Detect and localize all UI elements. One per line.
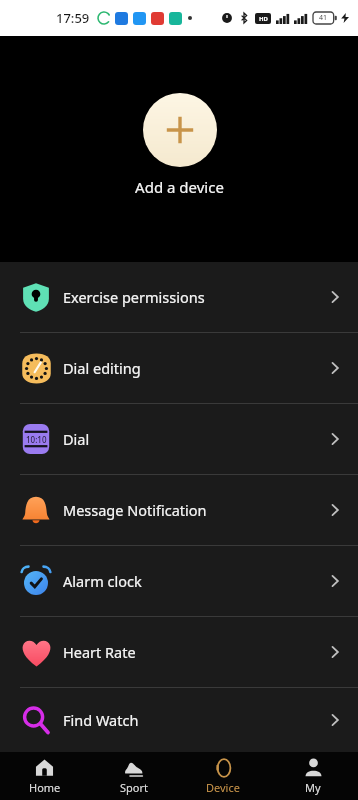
- button[interactable]: Add a device: [135, 93, 224, 197]
- staticText: HD: [259, 15, 268, 23]
- button[interactable]: Message Notification: [0, 475, 358, 545]
- staticText: Sport: [120, 780, 148, 795]
- staticText: Heart Rate: [63, 642, 136, 662]
- button[interactable]: Exercise permissions: [0, 262, 358, 332]
- staticText: 10:10: [26, 434, 47, 445]
- button[interactable]: Home: [0, 752, 89, 800]
- staticText: Dial editing: [63, 358, 141, 378]
- button[interactable]: My: [268, 752, 358, 800]
- button[interactable]: Sport: [89, 752, 178, 800]
- staticText: Alarm clock: [63, 571, 142, 591]
- staticText: Find Watch: [63, 710, 139, 730]
- staticText: Device: [206, 780, 240, 795]
- button[interactable]: Alarm clock: [0, 546, 358, 616]
- button[interactable]: Find Watch: [0, 688, 358, 752]
- staticText: 41: [319, 13, 328, 23]
- staticText: Exercise permissions: [63, 287, 205, 307]
- staticText: Message Notification: [63, 500, 207, 520]
- button[interactable]: Dial editing: [0, 333, 358, 403]
- staticText: My: [305, 780, 321, 795]
- staticText: Home: [29, 780, 61, 795]
- staticText: 17:59: [56, 9, 90, 27]
- button[interactable]: Heart Rate: [0, 617, 358, 687]
- staticText: Dial: [63, 429, 90, 449]
- button[interactable]: Device: [178, 752, 268, 800]
- button[interactable]: 10:10: [0, 404, 358, 474]
- staticText: Add a device: [135, 177, 224, 197]
